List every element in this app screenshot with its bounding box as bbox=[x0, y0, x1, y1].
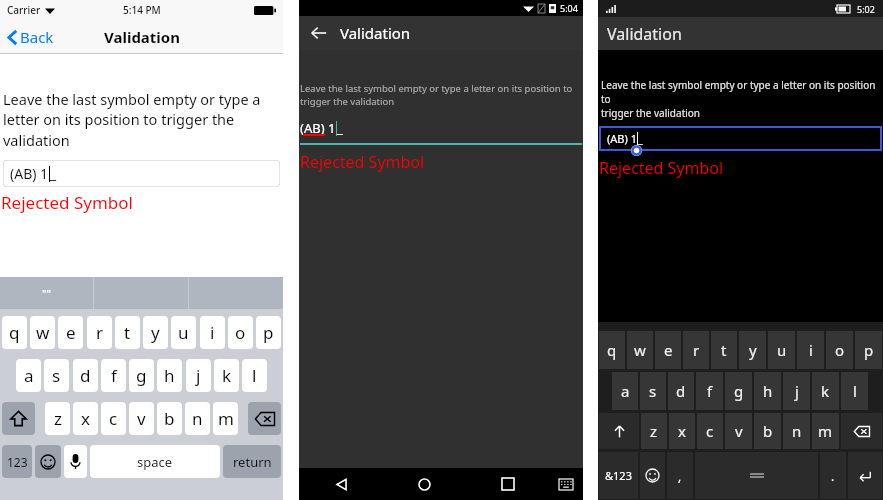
button[interactable]: c bbox=[697, 413, 723, 449]
button[interactable]: Emoji bbox=[640, 452, 665, 499]
button[interactable]: Recents bbox=[466, 468, 549, 500]
button[interactable]: v bbox=[129, 402, 154, 435]
button[interactable]: a bbox=[16, 359, 41, 392]
button[interactable]: Backspace bbox=[841, 413, 882, 449]
button[interactable]: b bbox=[157, 402, 182, 435]
staticText: t bbox=[124, 321, 131, 344]
staticText: u bbox=[178, 321, 189, 344]
staticText: m bbox=[818, 421, 833, 441]
button[interactable]: p bbox=[256, 316, 281, 349]
button[interactable]: q bbox=[2, 316, 27, 349]
button[interactable]: n bbox=[783, 413, 810, 449]
staticText: d bbox=[80, 364, 91, 387]
staticText: o bbox=[835, 340, 845, 360]
button[interactable]: j bbox=[186, 359, 211, 392]
staticText: p bbox=[263, 321, 274, 344]
button[interactable]: e bbox=[58, 316, 83, 349]
button[interactable]: Dictation bbox=[64, 445, 87, 478]
staticText: 5:02 bbox=[857, 3, 875, 15]
button[interactable]: b bbox=[754, 413, 781, 449]
button[interactable]: x bbox=[669, 413, 695, 449]
button[interactable]: g bbox=[725, 372, 752, 410]
button[interactable]: t bbox=[115, 316, 140, 349]
button[interactable]: Shift bbox=[2, 402, 35, 435]
button[interactable]: u bbox=[768, 331, 795, 369]
button[interactable]: (AB) 1 bbox=[600, 127, 881, 150]
staticText: d bbox=[676, 381, 686, 401]
button[interactable]: y bbox=[739, 331, 766, 369]
button[interactable]: k bbox=[812, 372, 839, 410]
staticText: s bbox=[649, 381, 657, 401]
button[interactable]: w bbox=[627, 331, 653, 369]
button[interactable]: , bbox=[667, 452, 693, 499]
button[interactable]: g bbox=[129, 359, 154, 392]
button[interactable]: Back bbox=[5, 23, 57, 51]
button[interactable]: . bbox=[820, 452, 846, 499]
staticText: k bbox=[222, 364, 232, 387]
button[interactable]: Shift bbox=[599, 413, 639, 449]
button[interactable]: i bbox=[797, 331, 824, 369]
button[interactable]: a bbox=[612, 372, 638, 410]
button[interactable]: (AB) 1 bbox=[300, 119, 582, 137]
staticText: (AB) 1 bbox=[607, 131, 637, 146]
button[interactable]: Home bbox=[383, 468, 466, 500]
button[interactable]: l bbox=[841, 372, 868, 410]
button[interactable]: r bbox=[683, 331, 709, 369]
button[interactable]: x bbox=[73, 402, 98, 435]
button[interactable]: Emoji bbox=[35, 445, 61, 478]
button[interactable]: c bbox=[101, 402, 126, 435]
button[interactable]: n bbox=[185, 402, 210, 435]
staticText: i bbox=[210, 321, 215, 344]
button[interactable]: s bbox=[640, 372, 666, 410]
staticText: Back bbox=[20, 27, 54, 47]
button[interactable]: j bbox=[783, 372, 810, 410]
button[interactable]: i bbox=[200, 316, 225, 349]
staticText: y bbox=[151, 321, 160, 344]
button[interactable]: z bbox=[45, 402, 70, 435]
button[interactable]: "" bbox=[0, 277, 93, 309]
button[interactable]: h bbox=[157, 359, 182, 392]
staticText: f bbox=[707, 381, 713, 401]
button[interactable]: r bbox=[87, 316, 112, 349]
button[interactable]: q bbox=[599, 331, 625, 369]
button[interactable]: m bbox=[213, 402, 238, 435]
button[interactable]: k bbox=[214, 359, 239, 392]
button[interactable]: u bbox=[171, 316, 196, 349]
button[interactable]: l bbox=[242, 359, 267, 392]
button[interactable]: w bbox=[30, 316, 55, 349]
button[interactable]: p bbox=[855, 331, 882, 369]
button[interactable]: Hide keyboard bbox=[549, 468, 583, 500]
button[interactable]: z bbox=[641, 413, 667, 449]
button[interactable]: (AB) 1 bbox=[3, 160, 280, 187]
button[interactable]: t bbox=[711, 331, 737, 369]
button[interactable]: f bbox=[696, 372, 723, 410]
button[interactable]: return bbox=[223, 445, 281, 478]
button[interactable]: o bbox=[826, 331, 853, 369]
button[interactable]: h bbox=[754, 372, 781, 410]
button[interactable]: 123 bbox=[2, 445, 32, 478]
button[interactable]: o bbox=[228, 316, 253, 349]
button[interactable]: f bbox=[101, 359, 126, 392]
button[interactable]: d bbox=[73, 359, 98, 392]
button[interactable]: Back bbox=[299, 468, 383, 500]
button[interactable]: e bbox=[655, 331, 681, 369]
button[interactable]: &123 bbox=[599, 452, 638, 499]
staticText: &123 bbox=[605, 468, 632, 483]
staticText: . bbox=[831, 468, 835, 484]
button[interactable]: y bbox=[143, 316, 168, 349]
button[interactable]: m bbox=[812, 413, 839, 449]
button[interactable]: Backspace bbox=[248, 402, 281, 435]
button[interactable]: v bbox=[725, 413, 752, 449]
staticText: c bbox=[706, 421, 714, 441]
staticText: g bbox=[734, 381, 744, 401]
button[interactable]: space bbox=[90, 445, 220, 478]
button[interactable]: Enter bbox=[848, 452, 882, 499]
staticText: return bbox=[233, 453, 272, 471]
button[interactable]: d bbox=[668, 372, 694, 410]
button[interactable]: Space bbox=[695, 452, 818, 499]
button[interactable]: Back bbox=[306, 20, 332, 46]
staticText: a bbox=[621, 381, 630, 401]
button[interactable]: s bbox=[44, 359, 69, 392]
